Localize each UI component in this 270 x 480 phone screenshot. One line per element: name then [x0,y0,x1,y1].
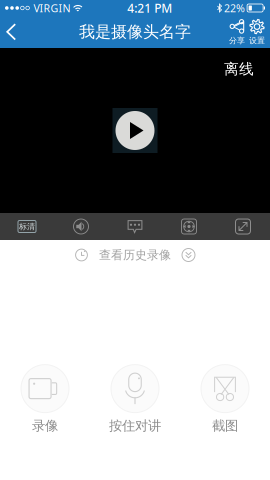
button[interactable]: 截图 [180,365,270,434]
staticText: 分享 [229,36,245,45]
button[interactable]: Sound [54,213,108,240]
button[interactable]: 设置 [247,17,267,47]
staticText: 22% [224,1,245,15]
button[interactable]: 查看历史录像 [0,240,270,270]
button[interactable]: Fullscreen [216,213,270,240]
staticText: 标清 [19,222,35,231]
button[interactable]: 标清 [0,213,54,240]
staticText: 设置 [249,36,265,45]
staticText: 离线 [224,60,254,78]
button[interactable]: Messages [108,213,162,240]
button[interactable]: 录像 [0,365,90,434]
staticText: 我是摄像头名字 [79,22,191,42]
staticText: 查看历史录像 [99,248,171,262]
staticText: VIRGIN [33,1,70,15]
staticText: 截图 [212,418,238,434]
staticText: 按住对讲 [109,418,161,434]
button[interactable]: 分享 [227,17,247,47]
button[interactable]: Pan tilt control [162,213,216,240]
button[interactable]: Back [0,16,30,48]
staticText: 录像 [32,418,58,434]
staticText: 4:21 PM [127,0,172,16]
button[interactable]: Play video [112,108,157,153]
button[interactable]: 按住对讲 [90,365,180,434]
